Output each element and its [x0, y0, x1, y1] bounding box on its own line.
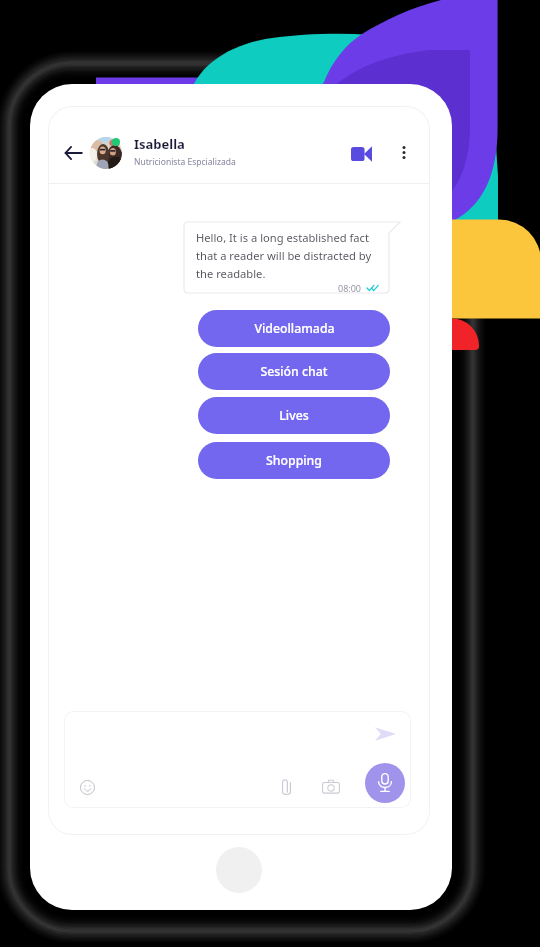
button[interactable]: Record voice message [365, 763, 405, 803]
button[interactable]: Attach file [274, 775, 298, 799]
button[interactable]: Video call [347, 140, 375, 168]
staticText: Lives [279, 407, 309, 424]
staticText: Hello, It is a long established fact tha… [196, 230, 379, 281]
staticText: Nutricionista Espcializada [134, 156, 236, 168]
button[interactable]: Camera [319, 775, 343, 799]
button[interactable]: Videollamada [198, 310, 390, 347]
button[interactable]: Sesión chat [198, 353, 390, 390]
staticText: Sesión chat [260, 363, 328, 380]
staticText: 08:00 [338, 282, 362, 293]
button[interactable]: Shopping [198, 442, 390, 479]
button[interactable]: Lives [198, 397, 390, 434]
button[interactable]: Send [372, 720, 399, 747]
staticText: Isabella [134, 135, 185, 153]
staticText: Videollamada [254, 320, 335, 337]
button[interactable]: Back [60, 140, 86, 166]
staticText: Shopping [266, 452, 322, 469]
button[interactable]: More options [392, 141, 415, 164]
button[interactable]: Emoji [75, 775, 99, 799]
